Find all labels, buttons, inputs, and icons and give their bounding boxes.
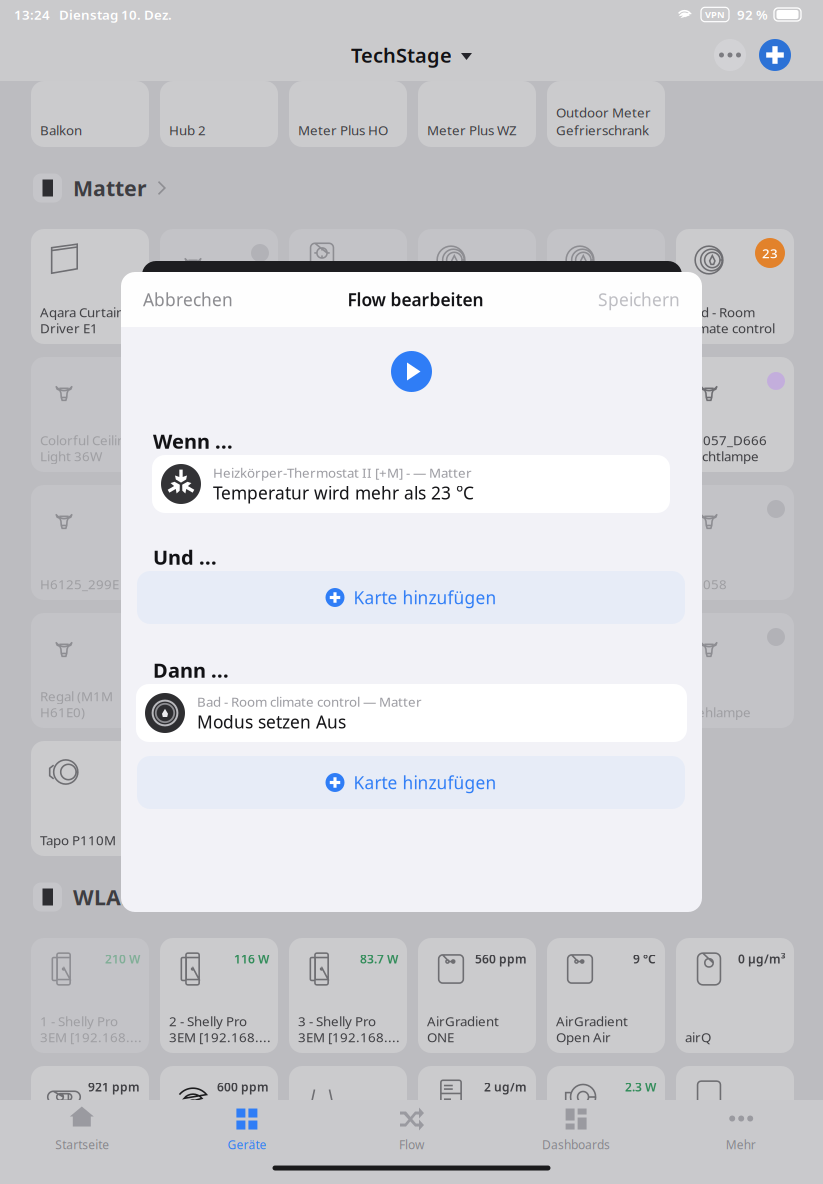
staticText: 2 - Shelly Pro: [169, 1012, 247, 1030]
staticText: 3 - Shelly Pro: [298, 1012, 376, 1030]
staticText: Thermostat: [556, 303, 628, 321]
button[interactable]: TechStage: [351, 42, 472, 68]
staticText: 9 °C: [633, 951, 656, 967]
staticText: 921 ppm: [88, 1079, 140, 1095]
staticText: H6125_299E: [40, 575, 119, 593]
staticText: Temperatur wird mehr als 23 °C: [213, 481, 474, 504]
staticText: 210 W: [105, 951, 140, 967]
staticText: Wenn ...: [153, 428, 233, 454]
staticText: Colorful Ceiling: [40, 431, 133, 449]
staticText: Geräte: [227, 1136, 266, 1152]
staticText: VPN: [705, 8, 725, 21]
staticText: Flow bearbeiten: [347, 288, 483, 311]
button[interactable]: Startseite: [0, 1100, 165, 1158]
staticText: 1 - Shelly Pro: [40, 1012, 118, 1030]
staticText: Aqara Curtain: [40, 303, 124, 321]
staticText: Regal 2: [169, 703, 214, 721]
button[interactable]: Heizkörper-Thermostat II [+M] - — Matter: [152, 455, 670, 513]
button[interactable]: Dashboards: [494, 1100, 658, 1158]
staticText: airQ: [685, 1028, 711, 1046]
staticText: Heizkörper-Thermostat II [+M] - — Matter: [213, 464, 472, 481]
staticText: Bad - Room climate control — Matter: [197, 693, 422, 710]
button[interactable]: Speichern: [598, 288, 680, 311]
staticText: Heizkörper: [298, 303, 368, 321]
staticText: 116 W: [234, 951, 269, 967]
staticText: 2 ug/m: [484, 1079, 527, 1095]
staticText: Und ...: [153, 544, 217, 570]
staticText: Schlafzimmer: [169, 303, 252, 321]
staticText: WLAN: [73, 883, 138, 911]
staticText: Büro: [556, 319, 586, 337]
staticText: ONE: [427, 1028, 454, 1046]
button[interactable]: Add: [759, 39, 791, 71]
staticText: Flow: [399, 1136, 424, 1152]
staticText: Küche: [169, 447, 207, 465]
staticText: TechStage: [351, 42, 452, 68]
staticText: Lampe 3: [298, 575, 351, 593]
staticText: 3EM [192.168....: [298, 1028, 400, 1046]
button[interactable]: Geräte: [165, 1100, 329, 1158]
staticText: 92 %: [737, 6, 768, 23]
staticText: 23: [762, 244, 778, 262]
staticText: 13:24: [14, 6, 50, 23]
staticText: Meter Plus HO: [298, 121, 388, 139]
staticText: Regal 3: [298, 703, 343, 721]
staticText: Stehlampe: [685, 703, 751, 721]
staticText: H6057_D666: [685, 431, 767, 449]
staticText: Tapo P110M: [40, 831, 116, 849]
staticText: H6058: [685, 575, 727, 593]
staticText: 560 ppm: [475, 951, 527, 967]
button[interactable]: Mehr: [658, 1100, 823, 1158]
staticText: 2.3 W: [625, 1079, 656, 1095]
staticText: Hub 2: [169, 121, 206, 139]
staticText: Licht: [169, 431, 198, 449]
staticText: Regal (M1M: [40, 687, 113, 705]
staticText: Dashboards: [542, 1136, 610, 1152]
button[interactable]: Karte hinzufügen: [137, 756, 685, 809]
button[interactable]: More options: [714, 39, 746, 71]
staticText: Lampe 4: [427, 575, 480, 593]
button[interactable]: Test flow: [391, 351, 432, 392]
staticText: Open Air: [556, 1028, 611, 1046]
staticText: Gefrierschrank: [556, 121, 649, 139]
staticText: Outdoor Meter: [556, 104, 651, 121]
button[interactable]: Abbrechen: [143, 288, 233, 311]
staticText: Thermostat: [427, 303, 499, 321]
staticText: 3EM [192.168....: [169, 1028, 271, 1046]
button[interactable]: Karte hinzufügen: [137, 571, 685, 624]
staticText: Nachtlampe: [685, 447, 759, 465]
staticText: Bad - Room: [685, 303, 755, 321]
staticText: 600 ppm: [217, 1079, 269, 1095]
staticText: Dienstag 10. Dez.: [50, 6, 172, 23]
staticText: AirGradient: [427, 1012, 499, 1030]
staticText: Matter: [73, 174, 147, 202]
staticText: H61E0): [40, 703, 85, 721]
staticText: Modus setzen Aus: [197, 710, 346, 733]
staticText: Abbrechen: [143, 288, 233, 311]
staticText: Dann ...: [153, 657, 229, 683]
staticText: Karte hinzufügen: [353, 771, 496, 794]
staticText: Driver E1: [40, 319, 98, 337]
staticText: Flur: [427, 447, 451, 465]
staticText: 0 µg/m³: [738, 951, 785, 967]
button[interactable]: Bad - Room climate control — Matter: [136, 684, 687, 742]
staticText: Meter Plus WZ: [427, 121, 517, 139]
staticText: Startseite: [55, 1136, 109, 1152]
staticText: Speichern: [598, 288, 680, 311]
staticText: Bad: [556, 447, 580, 465]
staticText: Light 36W: [40, 447, 102, 465]
staticText: climate control: [685, 319, 775, 337]
staticText: Thermostat: [298, 319, 370, 337]
staticText: 3EM [192.168....: [40, 1028, 142, 1046]
staticText: Karte hinzufügen: [353, 586, 496, 609]
button[interactable]: Flow: [329, 1100, 494, 1158]
staticText: Wohnzimmer: [427, 319, 510, 337]
staticText: AirGradient: [556, 1012, 628, 1030]
staticText: Mehr: [726, 1136, 756, 1152]
